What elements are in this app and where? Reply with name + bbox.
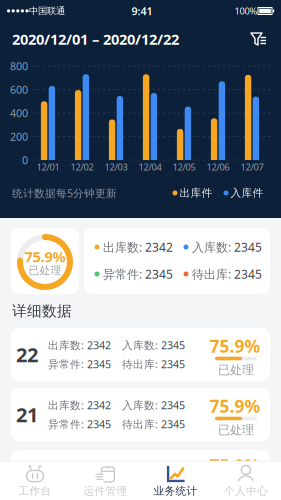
staticText: 75.9%: [209, 454, 260, 477]
staticText: 12/05: [172, 161, 195, 173]
staticText: 2020/12/01 – 2020/12/22: [12, 29, 179, 49]
staticText: 2345: [161, 398, 185, 412]
staticText: 出库件: [179, 186, 212, 199]
staticText: 异常件:: [48, 417, 84, 431]
staticText: 已处理: [218, 423, 254, 437]
staticText: 2342: [87, 398, 111, 412]
staticText: 2342: [145, 239, 173, 255]
staticText: 个人中心: [224, 484, 268, 497]
button[interactable]: Filter: [245, 25, 273, 53]
staticText: 入库件: [230, 186, 263, 199]
staticText: 800: [10, 59, 28, 73]
staticText: 12/04: [138, 161, 161, 173]
staticText: 400: [10, 106, 28, 120]
staticText: 异常件:: [103, 266, 142, 282]
button[interactable]: 业务统计: [144, 462, 208, 499]
staticText: 2345: [161, 417, 185, 431]
staticText: 22: [16, 341, 38, 368]
staticText: 待出库:: [122, 417, 158, 431]
staticText: 12/02: [70, 161, 93, 173]
staticText: 待出库:: [192, 266, 231, 282]
staticText: 2345: [161, 338, 185, 352]
staticText: 工作台: [18, 484, 51, 497]
staticText: 出库数:: [103, 239, 142, 255]
staticText: 2345: [145, 266, 173, 282]
staticText: 出库数:: [48, 398, 84, 412]
staticText: 详细数据: [12, 302, 72, 320]
button[interactable]: 22: [11, 328, 270, 381]
staticText: 运件管理: [83, 484, 127, 497]
staticText: 入库数:: [122, 338, 158, 352]
staticText: 100%: [234, 5, 257, 17]
staticText: 2342: [87, 338, 111, 352]
staticText: 9:41: [131, 4, 152, 18]
staticText: 待出库:: [122, 357, 158, 371]
staticText: 75.9%: [209, 394, 260, 417]
staticText: 2345: [234, 239, 262, 255]
staticText: 入库数:: [192, 239, 231, 255]
staticText: 中国联通: [29, 5, 65, 17]
staticText: 600: [10, 82, 28, 97]
staticText: 异常件:: [48, 357, 84, 371]
staticText: 2345: [87, 417, 111, 431]
staticText: 入库数:: [122, 398, 158, 412]
staticText: 业务统计: [154, 484, 198, 497]
button[interactable]: 工作台: [3, 462, 67, 499]
staticText: 0: [22, 153, 28, 167]
staticText: 12/01: [36, 161, 59, 173]
staticText: 出库数:: [48, 338, 84, 352]
button[interactable]: 21: [11, 388, 270, 441]
staticText: 12/06: [206, 161, 229, 173]
staticText: 75.9%: [24, 247, 65, 266]
staticText: 75.9%: [209, 334, 260, 357]
staticText: 已处理: [218, 363, 254, 377]
staticText: 200: [10, 129, 28, 144]
staticText: 2345: [161, 357, 185, 371]
staticText: 12/07: [240, 161, 263, 173]
button[interactable]: 运件管理: [73, 462, 137, 499]
staticText: 统计数据每5分钟更新: [12, 186, 117, 200]
button[interactable]: 个人中心: [214, 462, 278, 499]
staticText: 2345: [87, 357, 111, 371]
staticText: 12/03: [104, 161, 127, 173]
staticText: 2345: [234, 266, 262, 282]
staticText: 已处理: [28, 264, 61, 277]
staticText: 21: [16, 401, 38, 428]
